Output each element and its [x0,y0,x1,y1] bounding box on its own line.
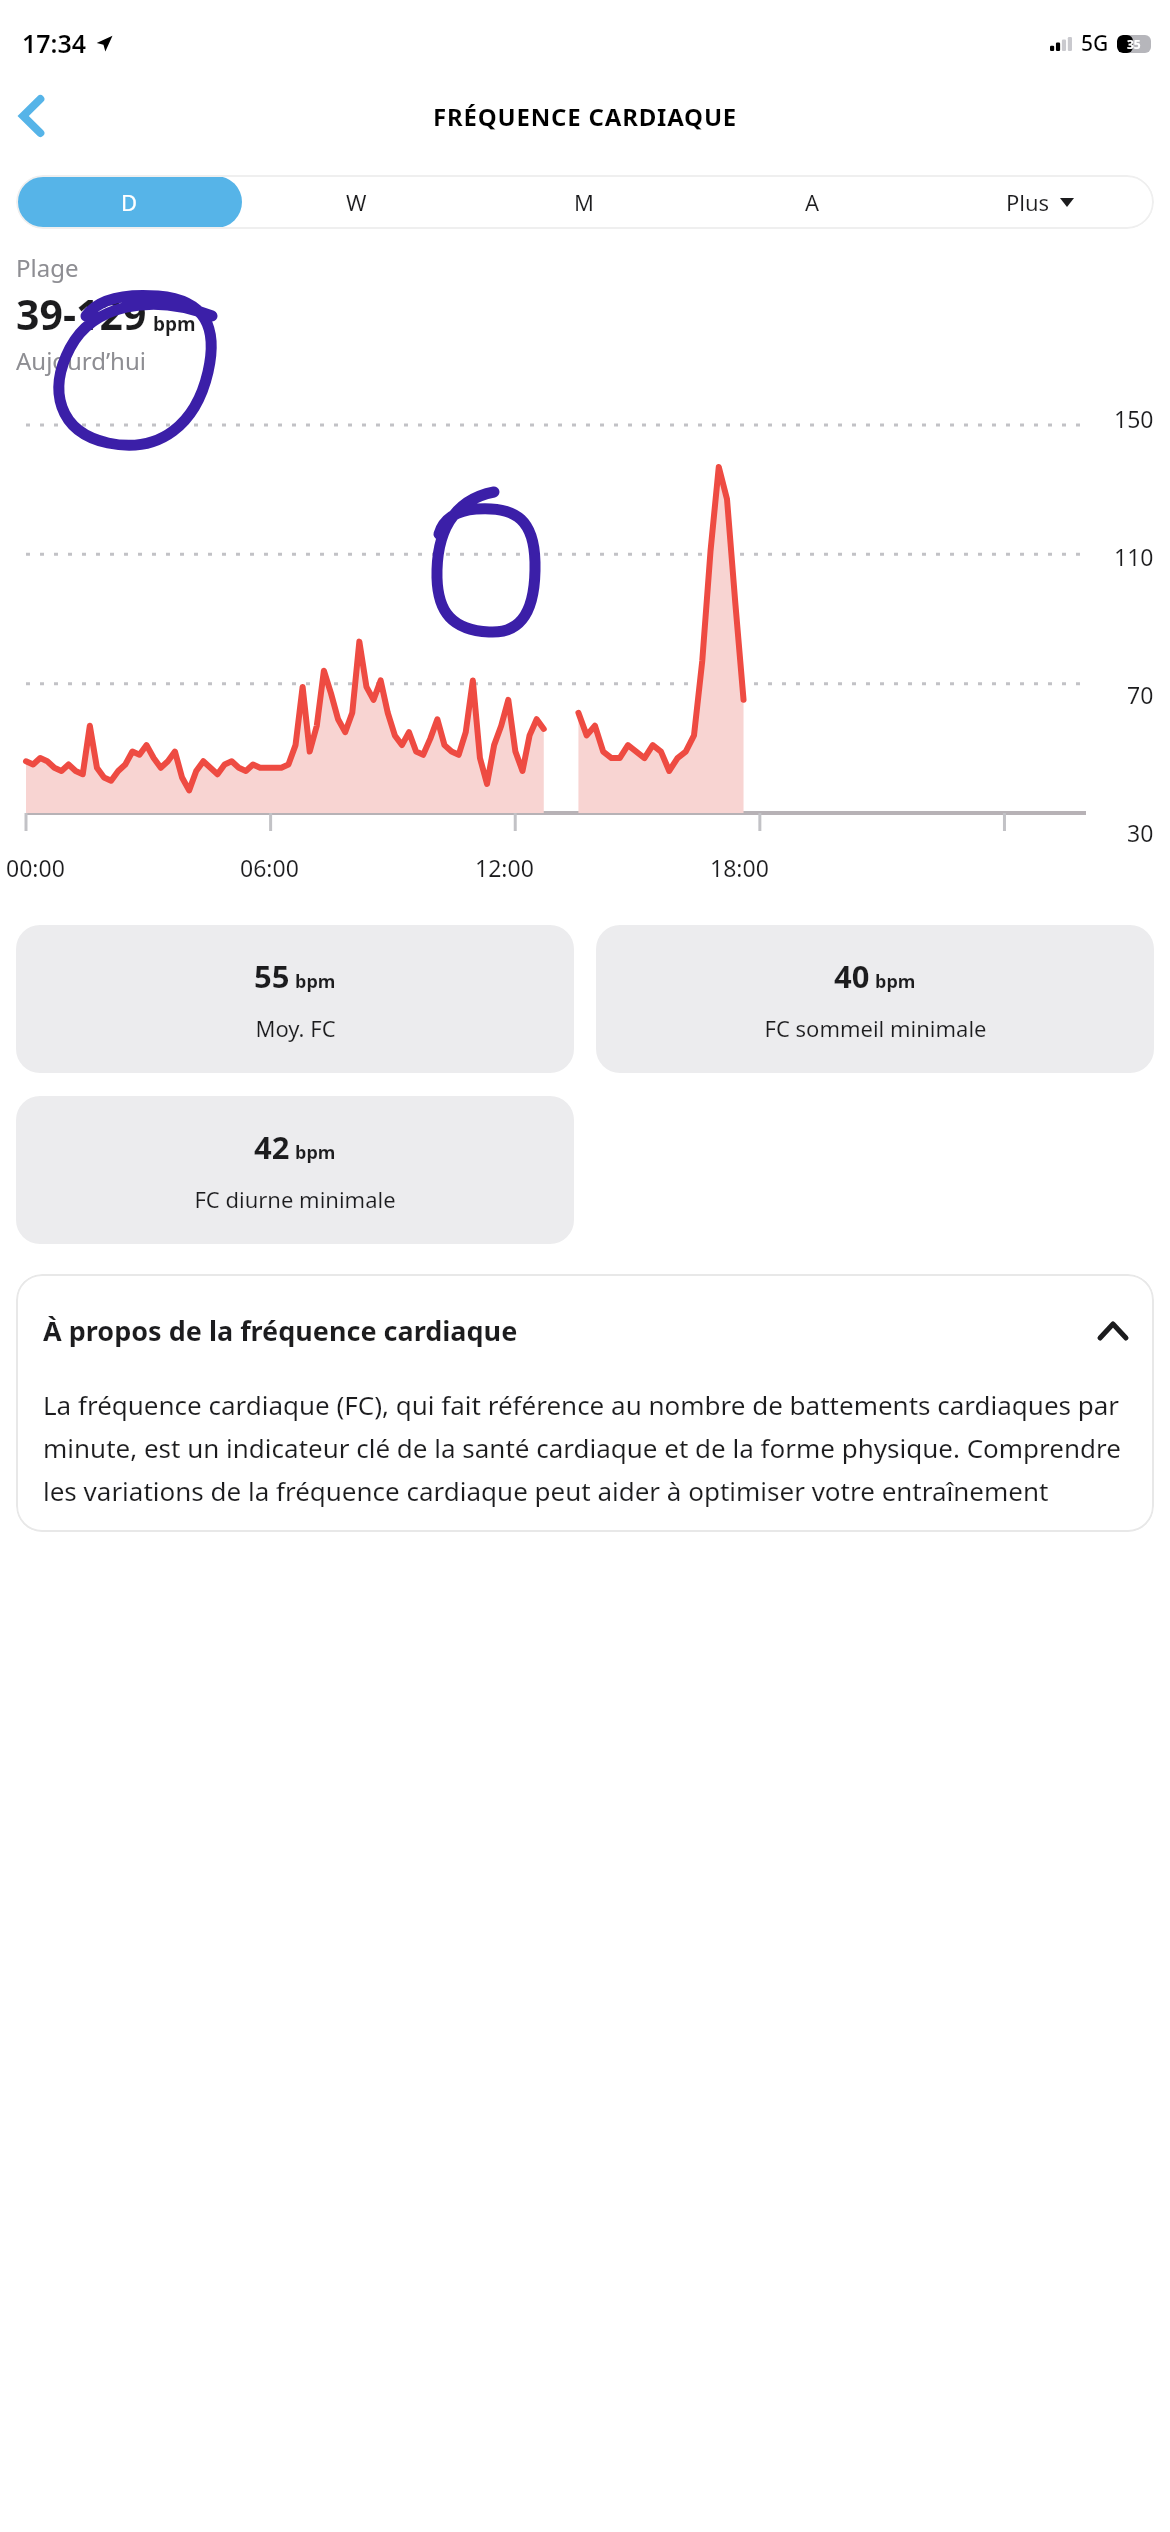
button[interactable]: Back [4,88,60,144]
staticText: bpm [875,969,916,994]
staticText: bpm [295,1140,336,1165]
staticText: A [805,187,820,217]
button[interactable]: M [470,175,698,229]
button[interactable]: Plus [926,175,1154,229]
staticText: FRÉQUENCE CARDIAQUE [433,100,738,133]
staticText: D [121,187,138,217]
staticText: 150 [1114,403,1154,434]
staticText: FC diurne minimale [194,1184,396,1214]
staticText: 55 [254,955,290,997]
staticText: 12:00 [475,852,710,883]
staticText: 06:00 [240,852,475,883]
button[interactable]: 55 [16,925,574,1073]
staticText: 35 [1127,36,1141,52]
staticText: 110 [1114,541,1154,572]
staticText: 42 [254,1126,290,1168]
other: Collapse section [1099,1323,1127,1339]
staticText: M [574,187,594,217]
staticText: bpm [153,311,196,337]
staticText: FC sommeil minimale [764,1013,987,1043]
staticText: 5G [1081,29,1109,58]
staticText: À propos de la fréquence cardiaque [43,1312,1099,1349]
staticText: Plage [16,251,79,284]
staticText: Plus [1006,187,1050,217]
staticText: 70 [1127,679,1154,710]
button[interactable]: W [243,175,470,229]
staticText: 18:00 [710,852,1086,883]
staticText: 30 [1127,817,1154,848]
staticText: bpm [295,969,336,994]
button[interactable]: A [698,175,926,229]
staticText: Aujourd’hui [16,344,146,377]
staticText: 40 [834,955,870,997]
staticText: Moy. FC [255,1013,336,1043]
button[interactable]: 40 [596,925,1154,1073]
staticText: 17:34 [22,26,87,60]
staticText: W [346,187,367,217]
button[interactable]: D [17,176,242,228]
staticText: 00:00 [6,852,240,883]
staticText: 39-129 [16,286,147,342]
button[interactable]: À propos de la fréquence cardiaque [43,1312,1127,1349]
button[interactable]: 42 [16,1096,574,1244]
staticText: La fréquence cardiaque (FC), qui fait ré… [43,1387,1127,1508]
